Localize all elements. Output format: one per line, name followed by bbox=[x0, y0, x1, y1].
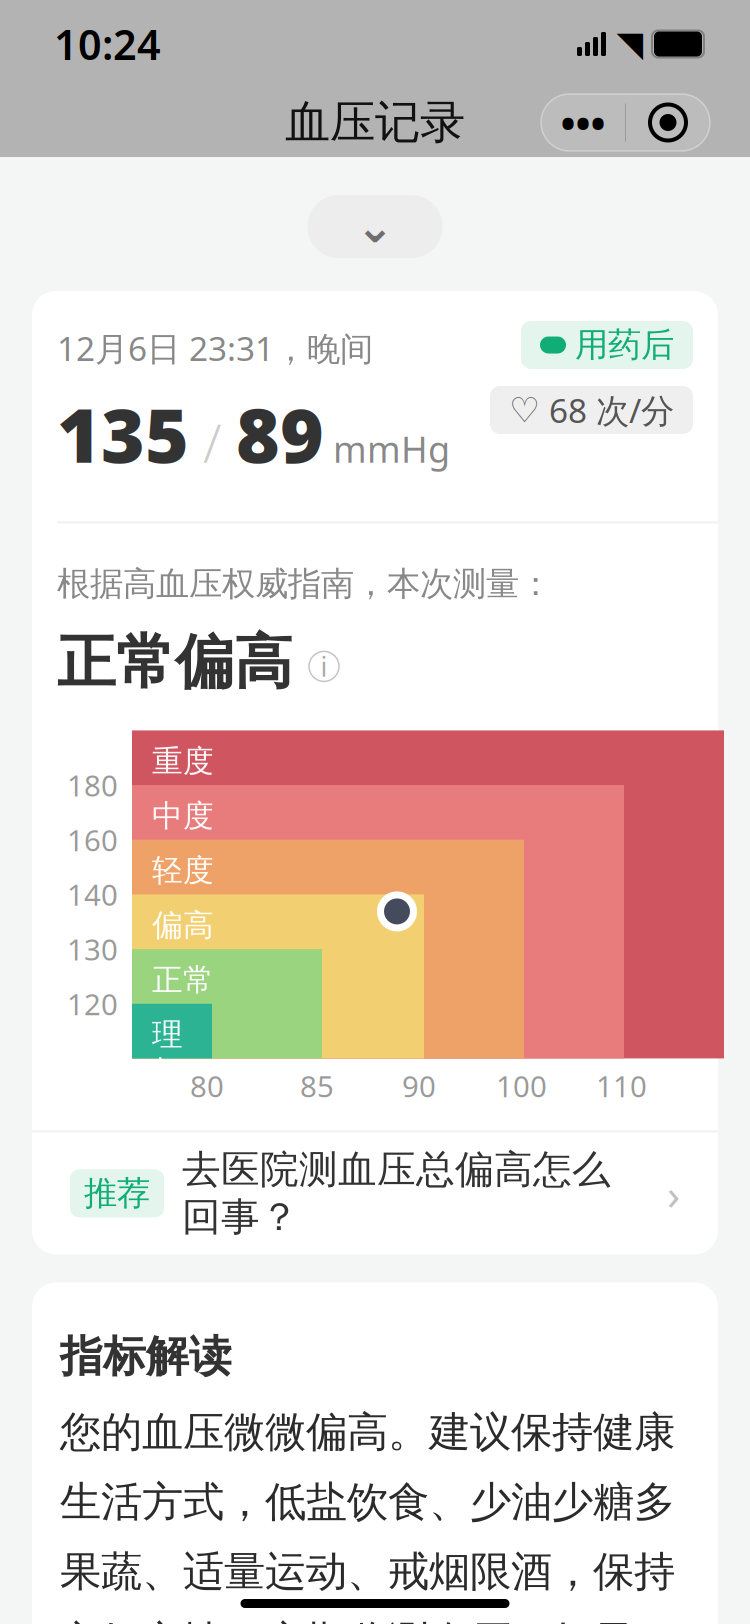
button[interactable]: Close bbox=[626, 94, 710, 151]
staticText: 理想 bbox=[152, 1016, 183, 1091]
staticText: ⌄ bbox=[356, 201, 394, 252]
staticText: 推荐 bbox=[84, 1173, 150, 1214]
staticText: 140 bbox=[67, 875, 118, 914]
staticText: 90 bbox=[402, 1066, 436, 1105]
staticText: 偏高 bbox=[152, 906, 214, 944]
staticText: 根据高血压权威指南，本次测量： bbox=[57, 563, 552, 604]
staticText: ◥ bbox=[616, 24, 643, 64]
staticText: ••• bbox=[560, 96, 605, 149]
staticText: 12月6日 23:31，晚间 bbox=[57, 326, 373, 370]
staticText: 160 bbox=[67, 820, 118, 859]
staticText: 正常偏高 bbox=[57, 626, 293, 698]
button[interactable]: 推荐 bbox=[32, 1132, 718, 1254]
staticText: 正常 bbox=[152, 961, 214, 999]
staticText: 85 bbox=[300, 1066, 334, 1105]
staticText: 130 bbox=[67, 930, 118, 969]
staticText: 68 次/分 bbox=[549, 388, 674, 432]
button[interactable]: About this result bbox=[309, 651, 339, 681]
staticText: i bbox=[320, 649, 327, 684]
staticText: 180 bbox=[67, 766, 118, 805]
staticText: mmHg bbox=[324, 425, 450, 473]
button[interactable]: More bbox=[541, 94, 625, 151]
staticText: 血压记录 bbox=[285, 95, 465, 150]
staticText: › bbox=[667, 1165, 680, 1222]
staticText: 轻度 bbox=[152, 852, 214, 889]
staticText: 89 bbox=[236, 384, 324, 483]
staticText: 10:24 bbox=[54, 17, 161, 71]
staticText: ♡ bbox=[509, 390, 540, 430]
staticText: 80 bbox=[190, 1066, 224, 1105]
staticText: 110 bbox=[596, 1066, 647, 1105]
button[interactable]: Collapse bbox=[307, 195, 442, 258]
staticText: 120 bbox=[67, 984, 118, 1023]
staticText: 去医院测血压总偏高怎么回事？ bbox=[182, 1146, 611, 1241]
staticText: 重度 bbox=[152, 742, 214, 780]
staticText: 用药后 bbox=[575, 324, 674, 365]
staticText: / bbox=[189, 407, 236, 477]
staticText: 您的血压微微偏高。建议保持健康生活方式，低盐饮食、少油少糖多果蔬、适量运动、戒烟… bbox=[60, 1407, 675, 1624]
staticText: 100 bbox=[496, 1066, 547, 1105]
staticText: 中度 bbox=[152, 797, 214, 835]
staticText: 135 bbox=[57, 384, 189, 483]
staticText: 指标解读 bbox=[60, 1330, 232, 1383]
